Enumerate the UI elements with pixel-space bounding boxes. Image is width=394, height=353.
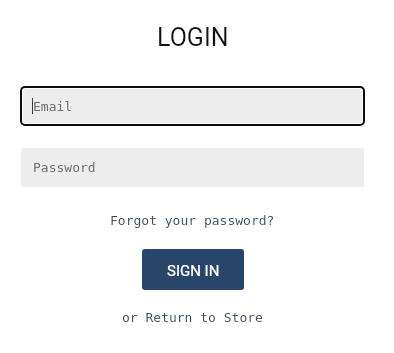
button[interactable]: Email [23,89,362,123]
staticText: SIGN IN [167,262,220,280]
staticText: Email [33,99,73,114]
staticText: Password [33,160,96,175]
button[interactable]: Forgot your password? [110,213,275,228]
staticText: LOGIN [157,23,229,52]
button[interactable]: Password [21,148,364,187]
button[interactable]: or Return to Store [122,310,263,325]
button[interactable]: SIGN IN [142,249,244,290]
